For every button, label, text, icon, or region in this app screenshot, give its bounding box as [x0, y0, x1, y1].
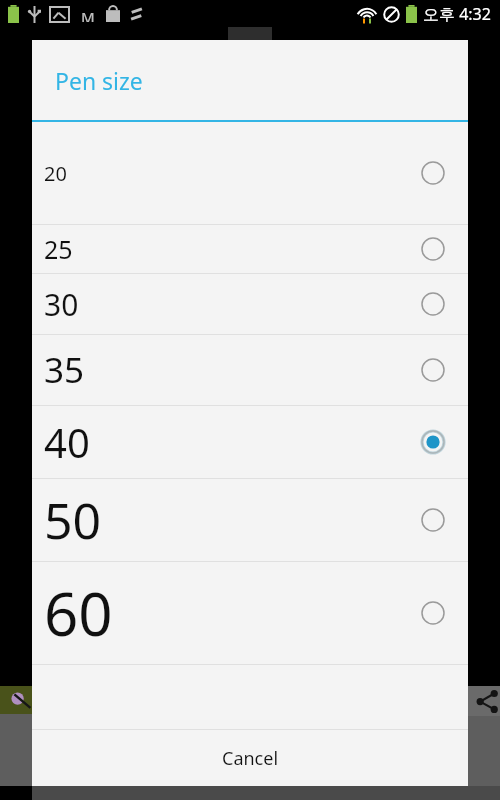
staticText: 60	[44, 572, 113, 654]
other: Not selected	[420, 291, 446, 317]
other: Selected	[420, 429, 446, 455]
staticText: 30	[44, 284, 79, 325]
staticText: Pen size	[55, 65, 143, 96]
button[interactable]: 20	[32, 122, 468, 224]
staticText: Cancel	[222, 746, 279, 771]
other: Not selected	[420, 507, 446, 533]
staticText: 40	[44, 415, 90, 469]
button[interactable]: 25	[32, 225, 468, 273]
button[interactable]: 50	[32, 479, 468, 561]
staticText: 35	[44, 346, 85, 394]
button[interactable]: 30	[32, 274, 468, 334]
other: Not selected	[420, 236, 446, 262]
staticText: 50	[44, 486, 102, 554]
staticText: M	[81, 7, 95, 22]
button[interactable]: Cancel	[32, 730, 468, 786]
other: Not selected	[420, 160, 446, 186]
button[interactable]: 40	[32, 406, 468, 478]
button[interactable]: 60	[32, 562, 468, 664]
other: Not selected	[420, 357, 446, 383]
staticText: 20	[44, 160, 67, 187]
other: Not selected	[420, 600, 446, 626]
staticText: 25	[44, 232, 73, 266]
staticText: 오후 4:32	[423, 3, 491, 25]
button[interactable]: 35	[32, 335, 468, 405]
